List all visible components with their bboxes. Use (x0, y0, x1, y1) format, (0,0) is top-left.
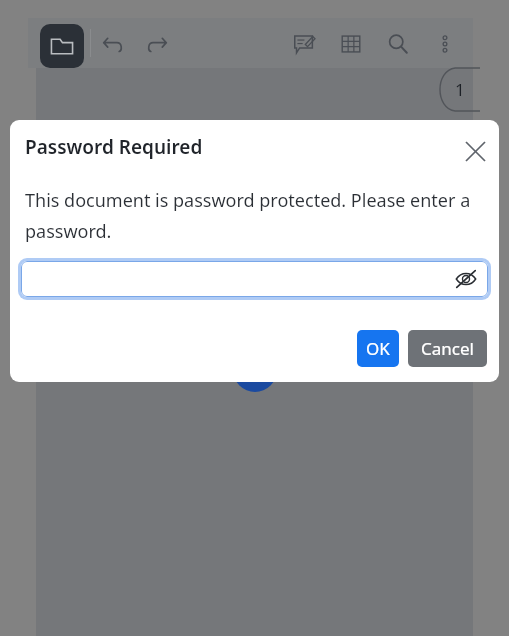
button[interactable]: OK (357, 330, 399, 367)
button[interactable]: Undo (100, 31, 126, 57)
staticText: This document is password protected. Ple… (25, 188, 485, 244)
button[interactable]: Table (338, 31, 364, 57)
button[interactable]: More options (432, 31, 458, 57)
button[interactable]: Search (385, 31, 411, 57)
button[interactable]: Redo (144, 31, 170, 57)
staticText: Cancel (421, 337, 474, 360)
button[interactable]: Cancel (408, 330, 487, 367)
button[interactable]: Close (455, 131, 495, 171)
staticText: 1 (455, 78, 465, 101)
staticText: Password Required (25, 134, 203, 160)
button[interactable]: Password input (18, 258, 491, 300)
button[interactable]: Open files (40, 24, 84, 68)
staticText: OK (366, 337, 390, 360)
button[interactable]: Annotate (291, 31, 317, 57)
button[interactable]: Show password (452, 265, 480, 293)
